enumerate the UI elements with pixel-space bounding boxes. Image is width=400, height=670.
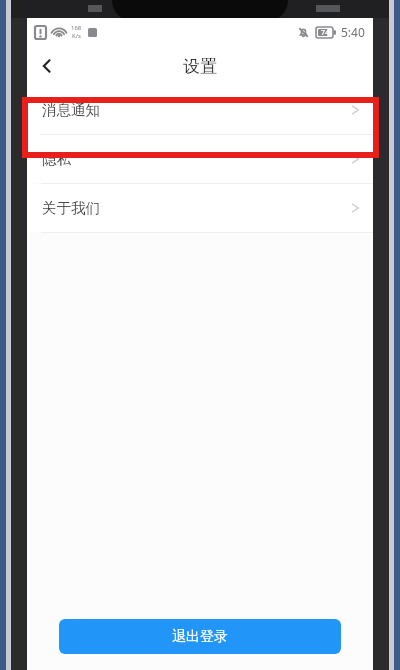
staticText: 5:40 bbox=[341, 24, 365, 40]
staticText: 隐私 bbox=[42, 150, 71, 168]
staticText: 退出登录 bbox=[172, 628, 228, 646]
button[interactable]: 消息通知 bbox=[27, 86, 373, 134]
staticText: K/s bbox=[72, 32, 81, 40]
button[interactable]: Back bbox=[27, 46, 67, 86]
button[interactable]: 隐私 bbox=[27, 135, 373, 183]
staticText: 74 bbox=[321, 28, 330, 38]
staticText: 168 bbox=[71, 24, 82, 32]
button[interactable]: 退出登录 bbox=[59, 619, 341, 654]
staticText: 设置 bbox=[183, 56, 217, 77]
staticText: 关于我们 bbox=[42, 199, 100, 217]
button[interactable]: 关于我们 bbox=[27, 184, 373, 232]
staticText: 消息通知 bbox=[42, 101, 100, 119]
